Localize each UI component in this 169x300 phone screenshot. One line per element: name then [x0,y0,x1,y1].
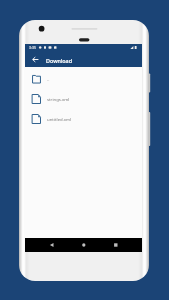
button[interactable]: Back [28,51,42,67]
staticText: .. [47,76,50,82]
staticText: untitled.xml [47,116,72,122]
button[interactable]: untitled.xml [25,109,142,129]
button[interactable]: .. [25,69,142,89]
staticText: Download [46,57,73,64]
staticText: strings.xml [47,96,70,102]
button[interactable]: strings.xml [25,89,142,109]
staticText: 3:35 [29,45,36,50]
